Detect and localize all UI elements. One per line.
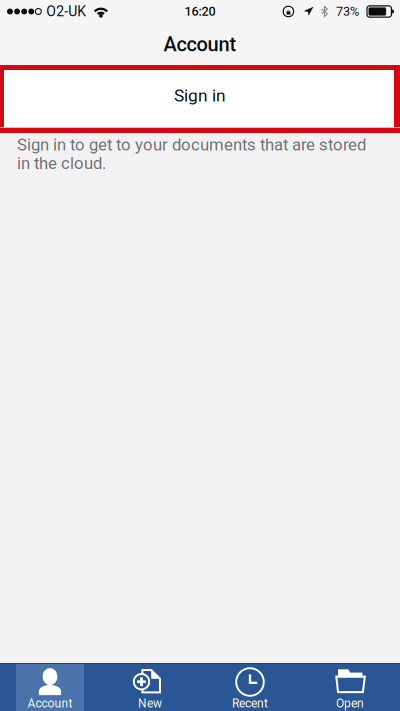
- button[interactable]: Recent: [200, 664, 300, 711]
- staticText: New: [138, 696, 162, 711]
- staticText: in the cloud.: [17, 153, 106, 173]
- staticText: 73%: [336, 4, 359, 19]
- staticText: Sign in: [174, 85, 226, 106]
- staticText: O2-UK: [46, 3, 86, 20]
- staticText: Open: [336, 696, 364, 711]
- button[interactable]: Open: [300, 664, 400, 711]
- staticText: Account: [27, 696, 72, 711]
- staticText: 16:20: [184, 4, 215, 19]
- staticText: Sign in to get to your documents that ar…: [17, 135, 366, 154]
- button[interactable]: New: [100, 664, 200, 711]
- button[interactable]: Sign in: [0, 70, 400, 127]
- staticText: Account: [163, 33, 236, 56]
- button[interactable]: Account: [0, 664, 100, 711]
- staticText: Recent: [232, 696, 268, 711]
